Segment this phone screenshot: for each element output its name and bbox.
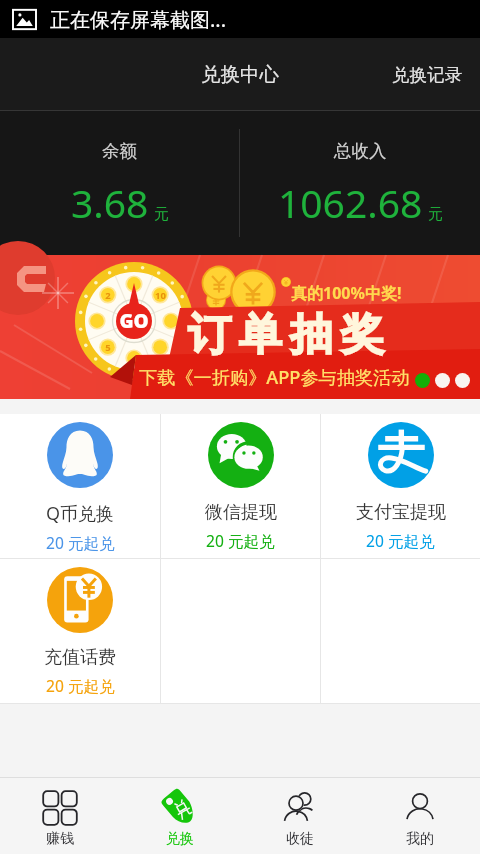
button[interactable]: 兑换记录 — [376, 56, 480, 94]
staticText: 订单抽奖 — [184, 308, 388, 362]
button[interactable]: 充值话费 — [0, 559, 160, 703]
staticText: 总收入 — [334, 140, 387, 162]
staticText: 兑换记录 — [392, 64, 463, 86]
staticText: 2 — [105, 289, 111, 302]
staticText: 我的 — [406, 830, 434, 848]
staticText: 支付宝提现 — [356, 501, 446, 524]
button[interactable]: 兑换 — [120, 778, 240, 854]
staticText: 收徒 — [286, 830, 314, 848]
button[interactable]: 余额 — [0, 111, 239, 255]
staticText: 20 元起兑 — [46, 675, 115, 696]
staticText: 20 元起兑 — [206, 530, 275, 551]
staticText: 1062.68 — [278, 176, 423, 229]
button[interactable]: 微信提现 — [161, 414, 320, 558]
staticText: 微信提现 — [205, 501, 277, 524]
button[interactable]: 真的100%中奖! — [0, 255, 480, 399]
staticText: 3.68 — [71, 176, 149, 229]
staticText: 充值话费 — [44, 646, 116, 669]
button[interactable]: 我的 — [360, 778, 480, 854]
button[interactable]: Q币兑换 — [0, 414, 160, 558]
staticText: 余额 — [102, 140, 137, 162]
button[interactable]: 兑换中心 — [189, 54, 291, 95]
staticText: 元 — [154, 205, 169, 224]
button[interactable]: 赚钱 — [0, 778, 120, 854]
staticText: Q币兑换 — [46, 501, 115, 526]
staticText: 5 — [105, 341, 111, 354]
staticText: 真的100%中奖! — [291, 282, 402, 304]
staticText: 兑换 — [166, 830, 194, 848]
staticText: 下载《一折购》APP参与抽奖活动 — [139, 365, 410, 390]
staticText: 正在保存屏幕截图... — [50, 6, 227, 33]
staticText: 20 元起兑 — [46, 532, 115, 553]
staticText: 兑换中心 — [201, 62, 279, 87]
button[interactable]: 收徒 — [240, 778, 360, 854]
button[interactable]: 支付宝提现 — [321, 414, 480, 558]
button[interactable]: 总收入 — [240, 111, 480, 255]
staticText: 10 — [155, 289, 166, 302]
other: Screenshot — [13, 8, 36, 31]
staticText: GO — [114, 308, 154, 334]
staticText: 赚钱 — [46, 830, 74, 848]
staticText: 20 元起兑 — [366, 530, 435, 551]
staticText: 元 — [428, 205, 443, 224]
